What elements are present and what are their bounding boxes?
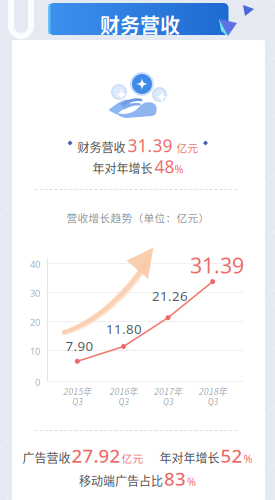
staticText: 52 <box>220 443 242 468</box>
staticText: 21.26 <box>152 287 188 305</box>
staticText: 83 <box>164 466 186 491</box>
staticText: 11.80 <box>106 320 142 338</box>
staticText: 2016年 <box>109 385 138 397</box>
staticText: 广告营收 <box>22 449 70 466</box>
staticText: 财务营收 <box>100 10 180 39</box>
staticText: % <box>174 162 183 176</box>
staticText: Q3 <box>72 396 82 407</box>
staticText: 20 <box>30 316 40 328</box>
staticText: 10 <box>30 345 40 357</box>
staticText: 移动端广告占比 <box>79 472 163 489</box>
staticText: 亿元 <box>121 450 143 466</box>
staticText: Q3 <box>208 396 218 407</box>
staticText: 31.39 <box>190 251 244 279</box>
staticText: 年对年增长 <box>92 159 152 177</box>
staticText: 营收增长趋势（单位：亿元） <box>66 210 209 225</box>
staticText: 2017年 <box>153 385 182 397</box>
staticText: 财务营收 <box>77 138 125 156</box>
staticText: 30 <box>30 287 40 299</box>
staticText: 年对年增长 <box>159 449 219 466</box>
staticText: 2015年 <box>63 385 92 397</box>
staticText: 27.92 <box>71 443 120 468</box>
staticText: 7.90 <box>65 337 93 355</box>
staticText: % <box>187 474 196 489</box>
staticText: % <box>243 451 252 466</box>
staticText: 31.39 <box>127 134 172 157</box>
staticText: 2018年 <box>198 385 227 397</box>
staticText: 0 <box>35 376 40 388</box>
staticText: 48 <box>154 155 174 178</box>
staticText: 亿元 <box>176 140 198 155</box>
staticText: Q3 <box>118 396 128 407</box>
staticText: Q3 <box>163 396 173 407</box>
staticText: 40 <box>30 258 40 270</box>
